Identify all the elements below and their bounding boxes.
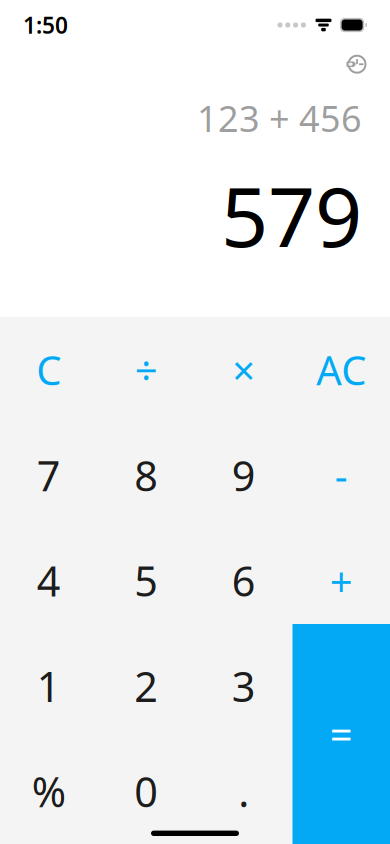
staticText: = — [330, 707, 353, 760]
staticText: ÷ — [135, 343, 158, 396]
staticText: 7 — [37, 448, 61, 503]
staticText: × — [232, 343, 255, 396]
button[interactable]: 5 — [97, 528, 195, 633]
staticText: 2 — [134, 658, 158, 713]
staticText: 579 — [221, 160, 362, 270]
staticText: 9 — [232, 448, 256, 503]
staticText: 1 — [37, 658, 61, 713]
button[interactable]: . — [195, 739, 292, 844]
button[interactable]: 0 — [97, 739, 195, 844]
staticText: 4 — [37, 553, 61, 608]
staticText: % — [32, 764, 66, 819]
button[interactable]: 6 — [195, 528, 292, 633]
staticText: 6 — [232, 553, 256, 608]
button[interactable]: AC — [292, 317, 390, 422]
button[interactable]: × — [195, 317, 292, 422]
button[interactable]: 3 — [195, 633, 292, 739]
button[interactable]: History — [335, 42, 379, 86]
button[interactable]: 2 — [97, 633, 195, 739]
staticText: 1:50 — [23, 10, 68, 40]
staticText: . — [238, 764, 249, 819]
staticText: 8 — [134, 448, 158, 503]
button[interactable]: % — [0, 739, 97, 844]
staticText: C — [36, 343, 61, 396]
staticText: 5 — [134, 553, 158, 608]
staticText: 3 — [232, 658, 256, 713]
button[interactable]: 9 — [195, 422, 292, 528]
button[interactable]: 1 — [0, 633, 97, 739]
button[interactable]: 8 — [97, 422, 195, 528]
button[interactable]: - — [292, 422, 390, 528]
button[interactable]: 4 — [0, 528, 97, 633]
button[interactable]: ÷ — [97, 317, 195, 422]
button[interactable]: + — [292, 528, 390, 633]
button[interactable]: C — [0, 317, 97, 422]
staticText: - — [335, 448, 348, 502]
staticText: 123 + 456 — [197, 94, 362, 142]
button[interactable]: 7 — [0, 422, 97, 528]
staticText: 0 — [134, 764, 158, 819]
button[interactable]: = — [292, 624, 390, 844]
staticText: + — [330, 554, 353, 607]
staticText: AC — [316, 343, 366, 396]
